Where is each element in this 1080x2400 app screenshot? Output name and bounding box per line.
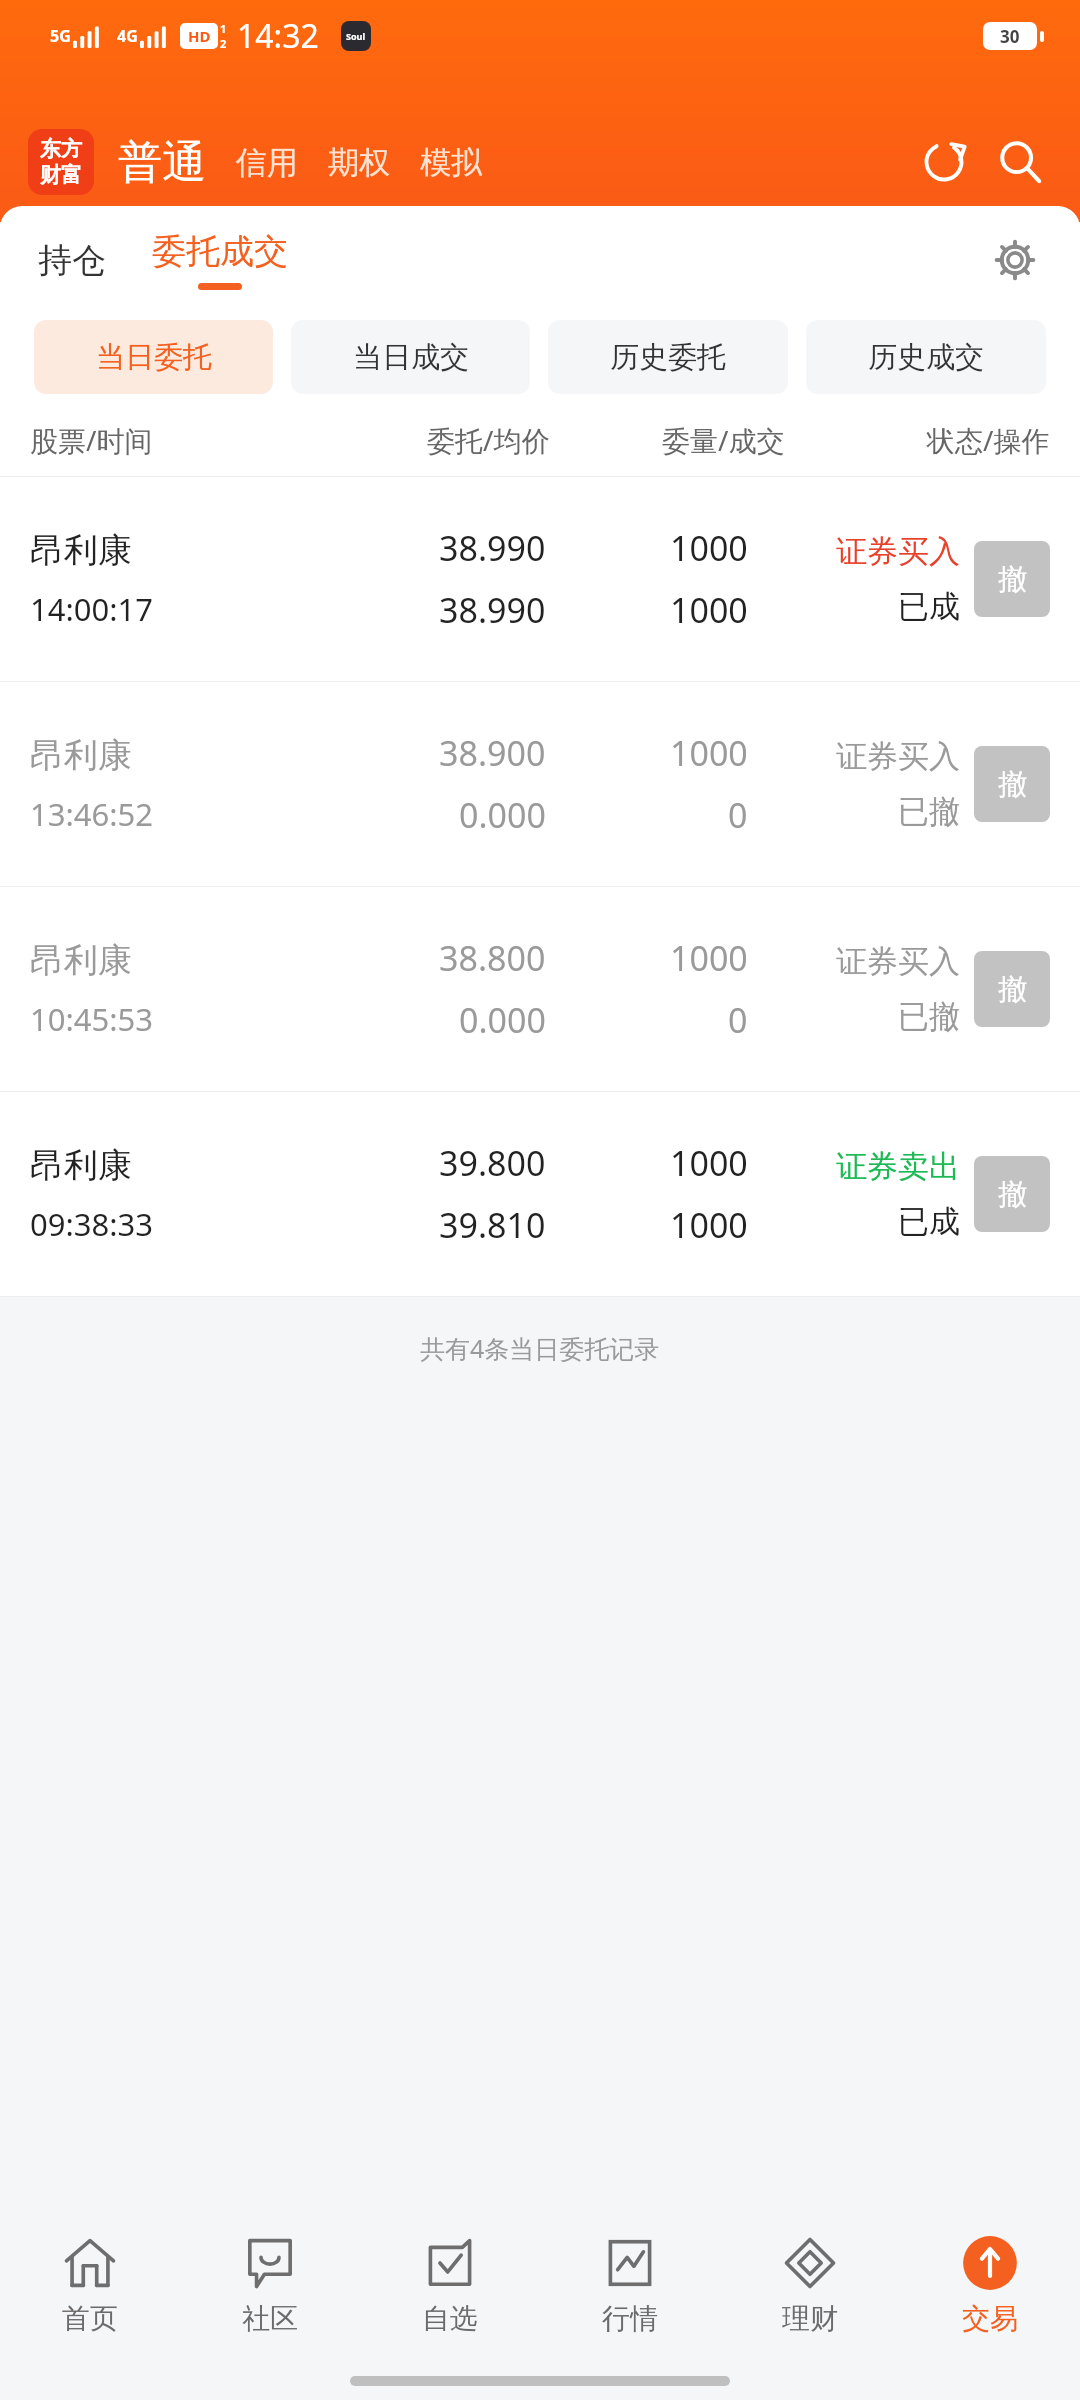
staticText: 当日委托: [96, 339, 212, 376]
staticText: 38.990: [439, 587, 546, 633]
button[interactable]: 历史成交: [806, 320, 1046, 394]
staticText: 当日成交: [353, 339, 469, 376]
staticText: 股票/时间: [30, 421, 153, 459]
staticText: 0.000: [459, 792, 546, 838]
button[interactable]: 历史委托: [548, 320, 788, 394]
staticText: 交易: [962, 2301, 1018, 2336]
button[interactable]: 当日成交: [291, 320, 530, 394]
staticText: 38.990: [439, 525, 546, 571]
staticText: 行情: [602, 2301, 658, 2336]
staticText: 撤: [998, 971, 1027, 1008]
button[interactable]: 行情: [540, 2210, 720, 2360]
staticText: 模拟: [420, 143, 482, 182]
button[interactable]: 撤: [974, 746, 1050, 822]
staticText: 委托成交: [152, 230, 288, 273]
staticText: 13:46:52: [30, 793, 154, 835]
button[interactable]: 社区: [180, 2210, 360, 2360]
staticText: 已成: [898, 1202, 960, 1241]
staticText: 共有4条当日委托记录: [420, 1331, 660, 1365]
staticText: 39.800: [439, 1140, 546, 1186]
staticText: 昂利康: [30, 1144, 132, 1187]
staticText: 理财: [782, 2301, 838, 2336]
staticText: 14:00:17: [30, 588, 154, 630]
button[interactable]: Refresh: [912, 130, 976, 194]
staticText: 已撤: [898, 792, 960, 831]
button[interactable]: 撤: [974, 541, 1050, 617]
staticText: 已撤: [898, 997, 960, 1036]
staticText: HD: [188, 26, 211, 46]
button[interactable]: 撤: [974, 1156, 1050, 1232]
staticText: 38.900: [439, 730, 546, 776]
staticText: 0: [728, 792, 748, 838]
button[interactable]: 信用: [234, 143, 300, 182]
button[interactable]: 撤: [974, 951, 1050, 1027]
button[interactable]: Search: [988, 130, 1052, 194]
staticText: 1000: [670, 1202, 748, 1248]
button[interactable]: 持仓: [34, 231, 110, 290]
button[interactable]: 昂利康: [30, 682, 1050, 886]
staticText: 历史委托: [610, 339, 726, 376]
button[interactable]: 昂利康: [30, 1092, 1050, 1296]
staticText: 10:45:53: [30, 998, 154, 1040]
staticText: 1000: [670, 587, 748, 633]
button[interactable]: 当日委托: [34, 320, 273, 394]
staticText: 信用: [236, 143, 298, 182]
staticText: 14:32: [237, 14, 319, 58]
staticText: 2: [220, 36, 227, 51]
staticText: 09:38:33: [30, 1203, 154, 1245]
staticText: 撤: [998, 561, 1027, 598]
button[interactable]: Settings: [984, 229, 1046, 291]
staticText: 证券买入: [836, 532, 960, 571]
button[interactable]: 交易: [900, 2210, 1080, 2360]
staticText: 昂利康: [30, 734, 132, 777]
staticText: 证券买入: [836, 737, 960, 776]
staticText: 财富: [40, 162, 82, 188]
button[interactable]: 普通: [118, 135, 206, 190]
staticText: 1000: [670, 525, 748, 571]
staticText: 昂利康: [30, 939, 132, 982]
staticText: 38.800: [439, 935, 546, 981]
staticText: 持仓: [38, 239, 106, 282]
staticText: 30: [1000, 25, 1020, 48]
button[interactable]: 理财: [720, 2210, 900, 2360]
staticText: 39.810: [439, 1202, 546, 1248]
staticText: 撤: [998, 766, 1027, 803]
button[interactable]: 期权: [326, 143, 392, 182]
staticText: 撤: [998, 1176, 1027, 1213]
staticText: 东方: [40, 136, 82, 162]
button[interactable]: 模拟: [418, 143, 484, 182]
staticText: 普通: [118, 135, 206, 190]
staticText: 4G: [117, 25, 138, 47]
staticText: 期权: [328, 143, 390, 182]
staticText: 社区: [242, 2301, 298, 2336]
staticText: 自选: [422, 2301, 478, 2336]
staticText: 委量/成交: [662, 421, 785, 459]
staticText: 已成: [898, 587, 960, 626]
staticText: 1000: [670, 1140, 748, 1186]
button[interactable]: 昂利康: [30, 477, 1050, 681]
staticText: 1: [220, 21, 227, 36]
staticText: Soul: [346, 30, 366, 42]
staticText: 委托/均价: [427, 421, 550, 459]
button[interactable]: 首页: [0, 2210, 180, 2360]
staticText: 历史成交: [868, 339, 984, 376]
staticText: 1000: [670, 730, 748, 776]
staticText: 1000: [670, 935, 748, 981]
staticText: 0.000: [459, 997, 546, 1043]
staticText: 0: [728, 997, 748, 1043]
staticText: 5G: [50, 25, 71, 47]
staticText: 首页: [62, 2301, 118, 2336]
staticText: 证券卖出: [836, 1147, 960, 1186]
button[interactable]: 昂利康: [30, 887, 1050, 1091]
staticText: 昂利康: [30, 529, 132, 572]
staticText: 证券买入: [836, 942, 960, 981]
button[interactable]: 自选: [360, 2210, 540, 2360]
staticText: 状态/操作: [927, 421, 1050, 459]
button[interactable]: 委托成交: [152, 230, 288, 290]
